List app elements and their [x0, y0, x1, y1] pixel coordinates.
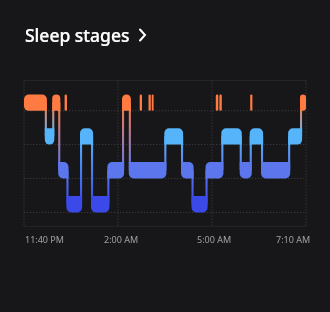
- staticText: 7:10 AM: [276, 233, 311, 245]
- staticText: 5:00 AM: [197, 233, 232, 245]
- staticText: 2:00 AM: [104, 233, 139, 245]
- button[interactable]: Sleep stages: [25, 23, 147, 47]
- staticText: Sleep stages: [25, 23, 130, 47]
- other: Open sleep stages details: [139, 28, 147, 42]
- staticText: 11:40 PM: [25, 233, 64, 245]
